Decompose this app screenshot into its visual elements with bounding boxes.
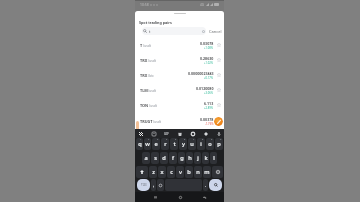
button[interactable]: Settings xyxy=(189,130,196,137)
button[interactable]: Keyboard switcher xyxy=(137,130,144,137)
staticText: z xyxy=(152,168,155,176)
button[interactable]: ?123 xyxy=(137,179,150,191)
button[interactable]: Favorite xyxy=(216,57,222,63)
button[interactable]: h xyxy=(186,152,193,164)
button[interactable]: Cancel xyxy=(209,29,222,34)
button[interactable]: p xyxy=(215,138,223,150)
staticText: p xyxy=(217,140,221,148)
button[interactable]: Recents xyxy=(151,193,159,201)
button[interactable]: x xyxy=(158,166,166,178)
button[interactable]: c xyxy=(167,166,175,178)
button[interactable]: TLM xyxy=(135,83,224,97)
staticText: 0.28630 xyxy=(200,56,214,61)
button[interactable]: TON xyxy=(135,98,224,112)
button[interactable]: Themes xyxy=(202,130,209,137)
button[interactable]: , xyxy=(151,179,156,191)
staticText: o xyxy=(208,140,212,148)
button[interactable]: e xyxy=(152,138,160,150)
button[interactable]: Edit xyxy=(214,117,223,126)
staticText: 6.113 xyxy=(204,101,214,106)
button[interactable]: z xyxy=(149,166,157,178)
staticText: GIF xyxy=(164,132,169,136)
button[interactable]: Emoji xyxy=(157,179,164,191)
staticText: 2 xyxy=(148,138,150,141)
button[interactable]: a xyxy=(142,152,150,164)
staticText: Spot trading pairs xyxy=(139,20,172,25)
button[interactable]: GIF xyxy=(163,130,170,137)
staticText: Cancel xyxy=(209,29,222,34)
staticText: TLM xyxy=(140,88,148,93)
button[interactable]: Favorite xyxy=(216,72,222,78)
button[interactable]: t xyxy=(142,27,206,35)
staticText: /usdt xyxy=(149,104,157,108)
button[interactable]: t xyxy=(170,138,178,150)
button[interactable]: TRUGT xyxy=(135,114,224,128)
button[interactable]: o xyxy=(206,138,214,150)
staticText: 0.03078 xyxy=(200,41,214,46)
button[interactable]: Back xyxy=(200,193,208,201)
button[interactable]: TRX xyxy=(135,68,224,82)
button[interactable]: Shift xyxy=(136,166,148,178)
staticText: v xyxy=(179,168,182,176)
button[interactable]: b xyxy=(185,166,193,178)
staticText: , xyxy=(153,182,155,189)
button[interactable]: n xyxy=(194,166,202,178)
staticText: l xyxy=(213,154,215,162)
button[interactable]: r xyxy=(161,138,169,150)
staticText: 3 xyxy=(157,138,159,141)
button[interactable]: Favorite xyxy=(216,87,222,93)
staticText: t xyxy=(149,29,151,34)
staticText: T xyxy=(140,43,143,48)
button[interactable]: j xyxy=(194,152,201,164)
staticText: a xyxy=(144,154,148,162)
button[interactable]: f xyxy=(169,152,177,164)
button[interactable]: k xyxy=(202,152,209,164)
button[interactable]: l xyxy=(210,152,217,164)
button[interactable]: Stickers xyxy=(150,130,157,137)
button[interactable]: s xyxy=(151,152,159,164)
staticText: -1.76% xyxy=(205,122,214,126)
staticText: 4 xyxy=(166,138,168,141)
button[interactable]: Clear xyxy=(201,29,205,33)
staticText: +3.06% xyxy=(204,91,214,95)
button[interactable]: T xyxy=(135,38,224,52)
button[interactable]: i xyxy=(197,138,205,150)
staticText: m xyxy=(204,168,210,176)
button[interactable]: . xyxy=(203,179,208,191)
button[interactable]: d xyxy=(160,152,168,164)
button[interactable]: g xyxy=(178,152,185,164)
staticText: /usdt xyxy=(143,44,151,48)
staticText: i xyxy=(200,140,202,148)
button[interactable]: y xyxy=(179,138,187,150)
staticText: x xyxy=(160,168,164,176)
button[interactable]: Favorite xyxy=(216,102,222,108)
staticText: d xyxy=(162,154,166,162)
button[interactable]: v xyxy=(176,166,184,178)
staticText: /btc xyxy=(148,74,154,78)
button[interactable]: Home xyxy=(176,193,184,201)
button[interactable]: m xyxy=(203,166,211,178)
staticText: r xyxy=(164,140,167,148)
staticText: . xyxy=(205,182,207,189)
staticText: 4G xyxy=(200,3,205,7)
button[interactable]: Voice input xyxy=(215,130,222,137)
staticText: 0.00378 xyxy=(200,117,214,122)
staticText: 1 xyxy=(140,138,142,141)
button[interactable]: TRX xyxy=(135,53,224,67)
staticText: +2.89% xyxy=(204,106,214,110)
staticText: b xyxy=(187,168,191,176)
button[interactable]: Backspace xyxy=(212,166,223,178)
staticText: +1.08% xyxy=(204,46,214,50)
staticText: y xyxy=(182,140,185,148)
button[interactable]: q xyxy=(136,138,143,150)
staticText: TON xyxy=(140,103,149,108)
staticText: TRX xyxy=(140,58,148,63)
staticText: 0 xyxy=(220,138,222,141)
button[interactable]: Favorite xyxy=(216,42,222,48)
staticText: TRUGT xyxy=(140,119,153,124)
button[interactable]: u xyxy=(188,138,196,150)
button[interactable]: Clipboard xyxy=(176,130,183,137)
button[interactable]: w xyxy=(144,138,151,150)
button[interactable]: Search xyxy=(209,179,222,191)
